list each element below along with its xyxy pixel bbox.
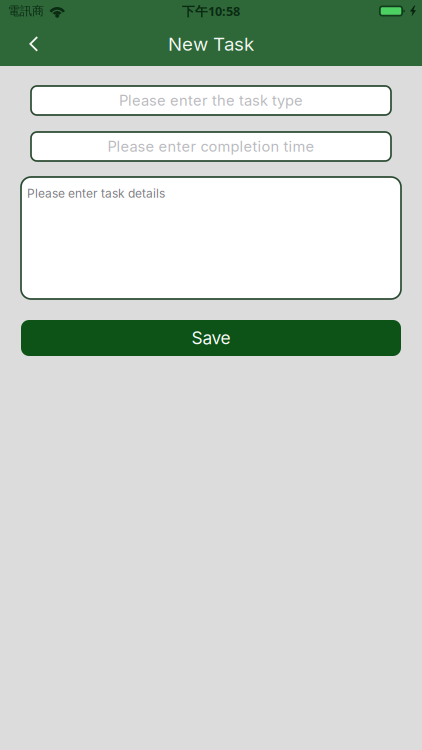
staticText: Please enter the task type — [119, 92, 303, 109]
button[interactable]: Please enter completion time — [31, 132, 391, 161]
staticText: Save — [191, 327, 230, 348]
button[interactable]: Please enter the task type — [31, 86, 391, 115]
button[interactable]: Save — [21, 320, 401, 356]
staticText: Please enter completion time — [107, 138, 314, 155]
staticText: Please enter task details — [27, 186, 165, 200]
staticText: 下午10:58 — [182, 2, 240, 20]
staticText: 電訊商 — [8, 3, 44, 18]
button[interactable]: Please enter task details — [21, 177, 401, 299]
staticText: New Task — [168, 33, 254, 55]
button[interactable]: Back — [29, 22, 73, 66]
